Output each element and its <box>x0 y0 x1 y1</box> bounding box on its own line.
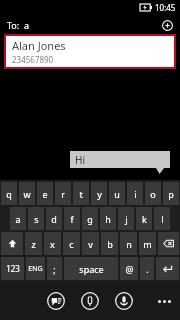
staticText: Hi <box>75 153 85 167</box>
staticText: n <box>126 238 132 250</box>
button[interactable]: Add contact <box>160 18 174 32</box>
button[interactable]: o <box>145 182 161 205</box>
staticText: k <box>142 213 147 225</box>
staticText: q <box>6 188 12 200</box>
staticText: z <box>31 238 36 250</box>
staticText: a <box>15 213 21 225</box>
button[interactable]: y <box>91 182 107 205</box>
button[interactable]: f <box>64 207 80 230</box>
staticText: w <box>23 188 31 200</box>
staticText: 234567890 <box>12 54 54 65</box>
button[interactable]: p <box>163 182 179 205</box>
staticText: . <box>146 263 149 275</box>
staticText: m <box>143 238 152 250</box>
button[interactable]: z <box>25 232 42 255</box>
staticText: t <box>79 188 83 200</box>
button[interactable]: e <box>37 182 53 205</box>
button[interactable]: Hi <box>70 151 170 168</box>
button[interactable]: Backspace <box>158 232 179 255</box>
button[interactable]: To: <box>0 15 180 34</box>
button[interactable]: More options <box>154 291 174 311</box>
button[interactable]: u <box>109 182 125 205</box>
staticText: j <box>125 213 128 225</box>
button[interactable]: l <box>154 207 170 230</box>
staticText: u <box>114 188 120 200</box>
staticText: h <box>105 213 111 225</box>
staticText: e <box>42 188 48 200</box>
staticText: a <box>24 19 30 31</box>
staticText: f <box>70 213 74 225</box>
staticText: o <box>150 188 156 200</box>
staticText: p <box>168 188 174 200</box>
button[interactable]: k <box>136 207 152 230</box>
staticText: i <box>134 188 137 200</box>
button[interactable]: b <box>101 232 118 255</box>
button[interactable]: d <box>46 207 62 230</box>
button[interactable]: i <box>127 182 143 205</box>
button[interactable]: . <box>140 257 154 280</box>
button[interactable]: s <box>28 207 44 230</box>
button[interactable]: r <box>55 182 71 205</box>
button[interactable]: Enter <box>156 257 179 280</box>
staticText: ; <box>53 263 56 275</box>
button[interactable]: t <box>73 182 89 205</box>
staticText: g <box>87 213 93 225</box>
staticText: 10:45 <box>155 2 176 13</box>
button[interactable]: Voice input <box>114 291 134 311</box>
staticText: l <box>161 213 164 225</box>
button[interactable]: j <box>118 207 134 230</box>
button[interactable]: Send message <box>46 291 66 311</box>
button[interactable]: g <box>82 207 98 230</box>
button[interactable]: c <box>63 232 80 255</box>
button[interactable]: n <box>120 232 137 255</box>
button[interactable]: Alan Jones <box>6 36 174 67</box>
button[interactable]: Attach <box>80 291 100 311</box>
staticText: b <box>107 238 113 250</box>
button[interactable]: space <box>64 257 118 280</box>
staticText: s <box>34 213 39 225</box>
button[interactable]: ENG <box>26 257 45 280</box>
staticText: r <box>61 188 65 200</box>
button[interactable]: v <box>82 232 99 255</box>
button[interactable]: q <box>1 182 17 205</box>
staticText: c <box>69 238 74 250</box>
button[interactable]: m <box>139 232 156 255</box>
staticText: ENG <box>28 264 43 274</box>
button[interactable]: Shift <box>1 232 23 255</box>
staticText: space <box>79 263 104 275</box>
button[interactable]: ; <box>47 257 62 280</box>
staticText: Alan Jones <box>12 38 66 53</box>
button[interactable]: @ <box>120 257 138 280</box>
button[interactable]: w <box>19 182 35 205</box>
staticText: y <box>97 188 102 200</box>
staticText: x <box>50 238 55 250</box>
button[interactable]: x <box>44 232 61 255</box>
staticText: v <box>88 238 93 250</box>
button[interactable]: a <box>10 207 26 230</box>
button[interactable]: h <box>100 207 116 230</box>
staticText: 123 <box>6 263 20 274</box>
button[interactable]: 123 <box>1 257 24 280</box>
staticText: @ <box>125 263 134 275</box>
staticText: To: <box>7 19 20 31</box>
staticText: d <box>51 213 57 225</box>
